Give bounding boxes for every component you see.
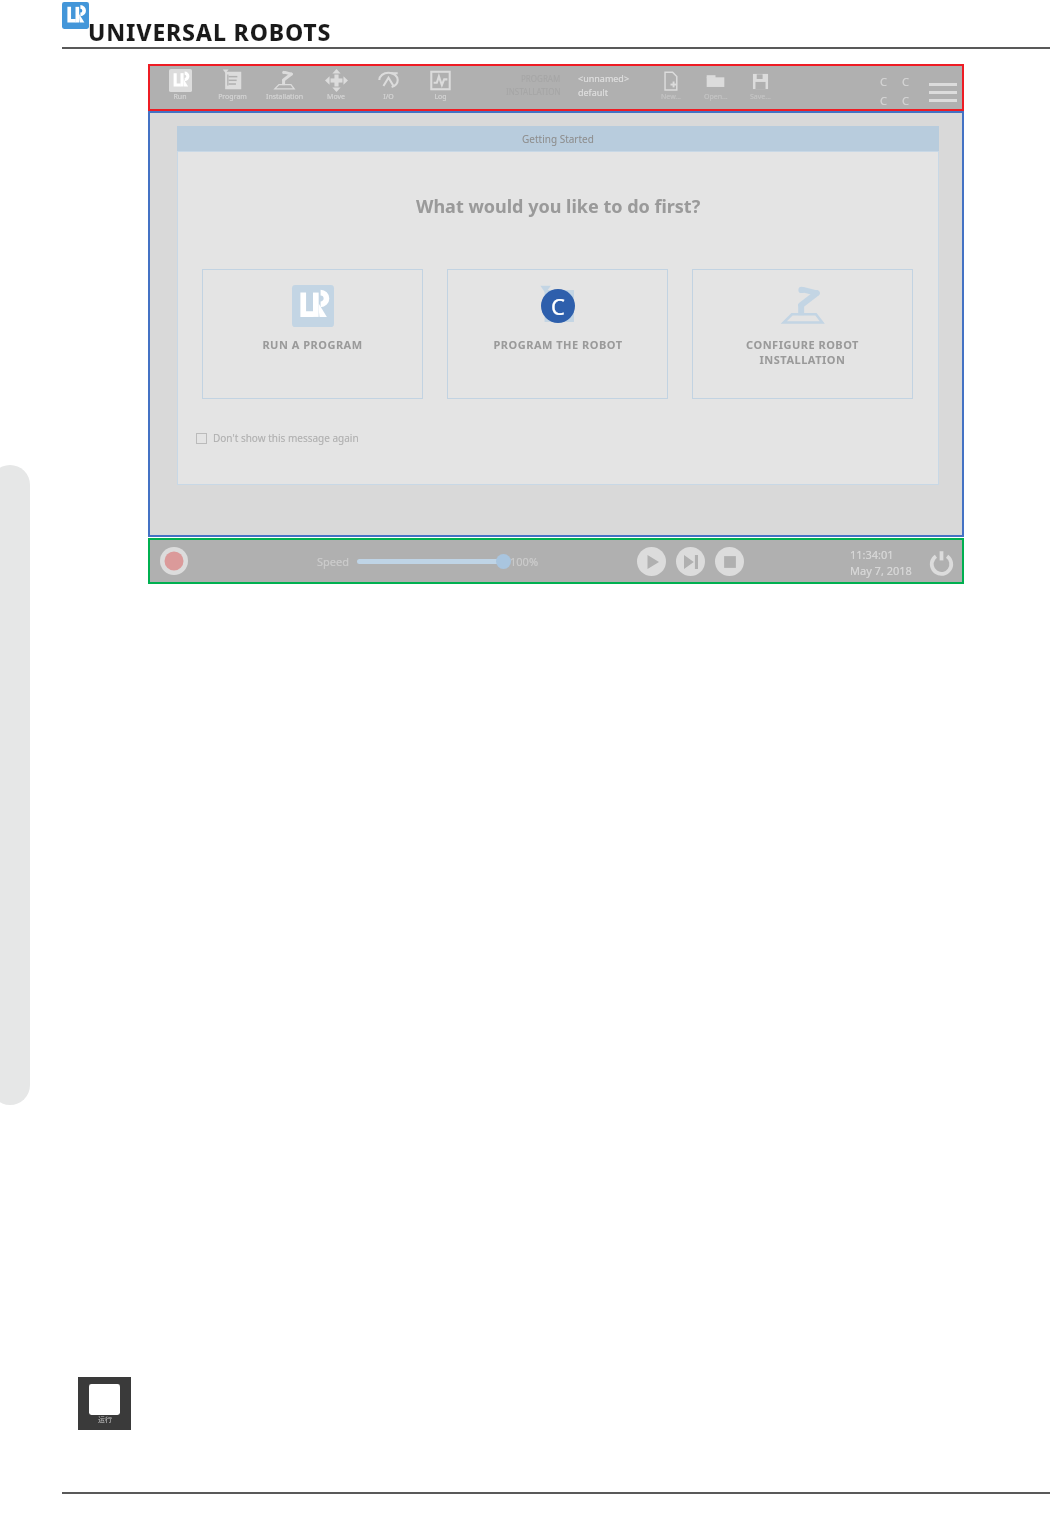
button[interactable]: Run — [154, 69, 206, 102]
staticText: PROGRAM — [521, 73, 561, 84]
staticText: Open... — [704, 92, 728, 102]
staticText: C — [902, 93, 909, 108]
button[interactable]: Menu — [928, 77, 958, 107]
staticText: INSTALLATION — [506, 86, 561, 97]
button[interactable]: Program — [206, 69, 258, 102]
staticText: Run — [173, 92, 187, 102]
button[interactable]: Don't show this message again — [196, 431, 359, 445]
button[interactable]: Save... — [738, 71, 783, 102]
staticText: Installation — [266, 92, 303, 102]
staticText: Program — [218, 92, 247, 102]
button[interactable]: Emergency stop — [160, 547, 188, 575]
staticText: C — [902, 74, 909, 89]
staticText: C — [551, 291, 565, 321]
staticText: I/O — [383, 92, 394, 102]
staticText: Log — [434, 92, 447, 102]
button[interactable]: Open... — [693, 71, 738, 102]
button[interactable]: Power — [928, 548, 955, 575]
button[interactable]: Installation — [258, 69, 310, 102]
button[interactable]: Stop — [715, 547, 744, 576]
button[interactable]: I/O — [362, 69, 414, 102]
button[interactable]: Step — [676, 547, 705, 576]
staticText: May 7, 2018 — [850, 563, 912, 578]
button[interactable]: CONFIGURE ROBOT INSTALLATION — [692, 269, 913, 399]
staticText: <unnamed> — [578, 72, 630, 84]
staticText: 11:34:01 — [850, 547, 894, 562]
staticText: default — [578, 86, 608, 98]
staticText: CONFIGURE ROBOT INSTALLATION — [746, 337, 859, 367]
button[interactable]: C — [447, 269, 668, 399]
staticText: Getting Started — [522, 132, 594, 146]
staticText: C — [880, 74, 887, 89]
button[interactable]: New... — [648, 71, 693, 102]
staticText: Save... — [750, 92, 771, 102]
staticText: C — [880, 93, 887, 108]
button[interactable]: Play — [637, 547, 666, 576]
button[interactable]: Log — [414, 69, 466, 102]
staticText: 运行 — [98, 1415, 112, 1424]
staticText: Don't show this message again — [213, 431, 359, 445]
staticText: UNIVERSAL ROBOTS — [88, 16, 332, 47]
staticText: Move — [327, 92, 345, 102]
staticText: Speed — [317, 554, 349, 569]
staticText: RUN A PROGRAM — [262, 337, 363, 352]
staticText: PROGRAM THE ROBOT — [493, 337, 623, 352]
staticText: What would you like to do first? — [416, 194, 701, 219]
button[interactable]: RUN A PROGRAM — [202, 269, 423, 399]
staticText: 100% — [510, 554, 539, 569]
staticText: New... — [661, 92, 681, 102]
button[interactable]: Move — [310, 69, 362, 102]
